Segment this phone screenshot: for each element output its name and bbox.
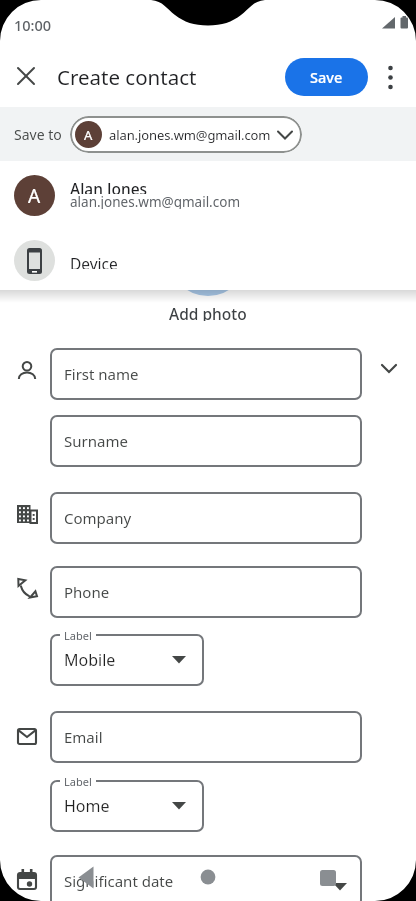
- staticText: Alan Jones: [70, 178, 148, 194]
- button[interactable]: Email: [50, 711, 362, 763]
- staticText: A: [28, 183, 41, 209]
- staticText: Save: [310, 67, 343, 87]
- button[interactable]: Significant date: [50, 855, 362, 901]
- staticText: Label: [64, 628, 92, 643]
- staticText: Save to: [14, 125, 62, 143]
- button[interactable]: Company: [50, 492, 362, 544]
- button[interactable]: Save: [285, 58, 368, 96]
- button[interactable]: A: [0, 166, 416, 224]
- staticText: alan.jones.wm@gmail.com: [109, 126, 271, 144]
- staticText: alan.jones.wm@gmail.com: [70, 193, 241, 209]
- button[interactable]: Mobile: [50, 634, 204, 686]
- button[interactable]: [382, 60, 399, 96]
- button[interactable]: [320, 870, 336, 886]
- button[interactable]: [381, 364, 397, 373]
- button[interactable]: Surname: [50, 415, 362, 467]
- staticText: Email: [64, 727, 103, 747]
- staticText: Phone: [64, 582, 110, 602]
- button[interactable]: A: [70, 116, 302, 153]
- button[interactable]: First name: [50, 348, 362, 400]
- staticText: Significant date: [64, 871, 174, 891]
- staticText: Company: [64, 508, 132, 528]
- staticText: 10:00: [14, 15, 52, 31]
- button[interactable]: Device: [0, 232, 416, 290]
- button[interactable]: Home: [50, 780, 204, 832]
- button[interactable]: [78, 866, 94, 889]
- button[interactable]: [200, 869, 216, 885]
- staticText: Device: [70, 253, 118, 269]
- staticText: A: [84, 126, 93, 144]
- staticText: Surname: [64, 431, 128, 451]
- staticText: First name: [64, 364, 139, 384]
- staticText: Mobile: [64, 649, 116, 671]
- button[interactable]: Phone: [50, 566, 362, 618]
- staticText: Create contact: [57, 63, 197, 91]
- button[interactable]: [16, 66, 36, 86]
- staticText: Label: [64, 774, 92, 789]
- staticText: Add photo: [169, 303, 247, 321]
- staticText: Home: [64, 795, 110, 817]
